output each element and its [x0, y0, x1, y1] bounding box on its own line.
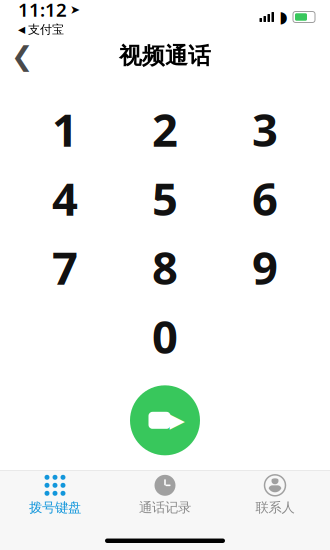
- staticText: 11:12: [18, 0, 67, 22]
- button[interactable]: 联系人: [220, 472, 330, 518]
- button[interactable]: 7: [15, 233, 115, 302]
- staticText: ◗: [279, 8, 287, 26]
- staticText: 5: [152, 168, 178, 228]
- button[interactable]: 6: [215, 164, 315, 233]
- staticText: 0: [152, 306, 178, 366]
- staticText: 2: [152, 99, 178, 159]
- staticText: 7: [52, 237, 78, 297]
- button[interactable]: 2: [115, 95, 215, 164]
- staticText: 4: [52, 168, 78, 228]
- staticText: 视频通话: [119, 42, 211, 70]
- button[interactable]: 3: [215, 95, 315, 164]
- staticText: 1: [52, 99, 78, 159]
- staticText: 支付宝: [28, 22, 64, 37]
- button[interactable]: 4: [15, 164, 115, 233]
- staticText: ◀: [18, 24, 25, 35]
- staticText: 9: [252, 237, 278, 297]
- staticText: 8: [152, 237, 178, 297]
- button[interactable]: 8: [115, 233, 215, 302]
- button[interactable]: 5: [115, 164, 215, 233]
- staticText: 3: [252, 99, 278, 159]
- button[interactable]: 0: [115, 302, 215, 371]
- button[interactable]: Back: [0, 34, 44, 78]
- staticText: 6: [252, 168, 278, 228]
- button[interactable]: 拨号键盘: [0, 472, 110, 518]
- staticText: ▶: [169, 409, 184, 432]
- button[interactable]: 1: [15, 95, 115, 164]
- staticText: 拨号键盘: [29, 499, 81, 516]
- button[interactable]: 9: [215, 233, 315, 302]
- staticText: 联系人: [255, 499, 294, 516]
- button[interactable]: 通话记录: [110, 472, 220, 518]
- button[interactable]: Start video call: [130, 385, 200, 455]
- staticText: ❮: [11, 41, 33, 71]
- staticText: 通话记录: [139, 499, 191, 516]
- staticText: ➤: [70, 3, 80, 16]
